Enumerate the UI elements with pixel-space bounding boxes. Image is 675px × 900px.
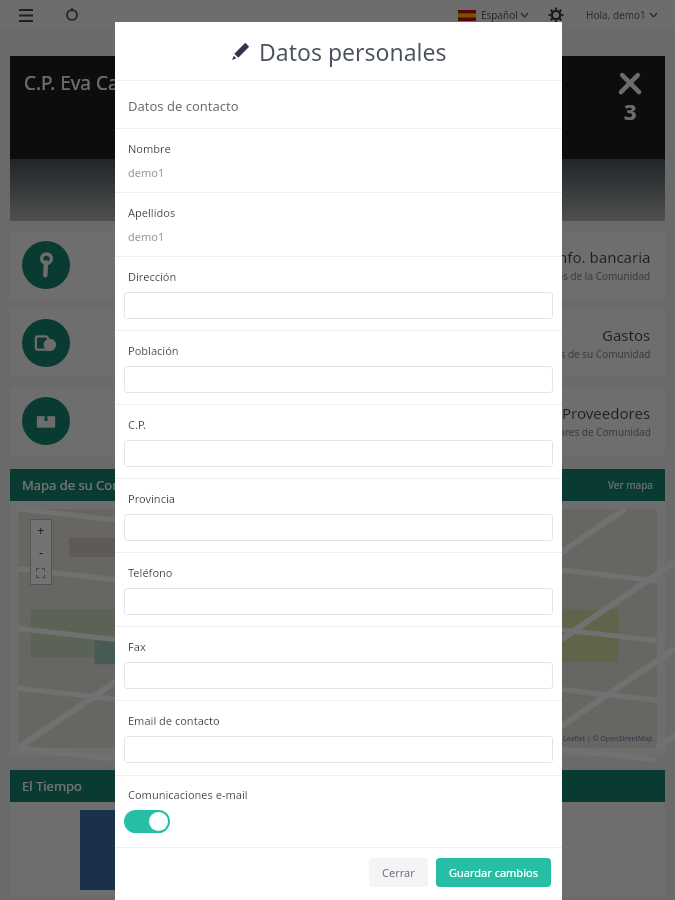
- button[interactable]: [124, 440, 553, 467]
- button[interactable]: Español: [454, 8, 532, 22]
- staticText: Provincia: [128, 491, 175, 506]
- staticText: Mapa de su Comunidad: [22, 476, 168, 494]
- staticText: Apellidos: [128, 205, 176, 220]
- button[interactable]: Notifications: [60, 3, 84, 27]
- staticText: Leaflet | © OpenStreetMap: [563, 734, 653, 744]
- staticText: Teléfono: [128, 565, 173, 580]
- staticText: Proveedores: [562, 403, 651, 423]
- staticText: Población: [128, 343, 179, 358]
- staticText: C.P.: [128, 417, 147, 432]
- staticText: ...edores de Comunidad: [539, 425, 651, 439]
- button[interactable]: +: [30, 519, 52, 541]
- button[interactable]: [124, 736, 553, 763]
- staticText: Guardar cambios: [449, 865, 538, 880]
- button[interactable]: ⛶: [30, 563, 52, 585]
- staticText: Info. bancaria: [553, 247, 651, 267]
- button[interactable]: Settings: [546, 5, 566, 25]
- button[interactable]: Proveedores: [10, 387, 665, 455]
- staticText: demo1: [128, 229, 165, 244]
- button[interactable]: -: [30, 541, 52, 563]
- button[interactable]: [124, 366, 553, 393]
- button[interactable]: Cerrar: [369, 858, 428, 887]
- button[interactable]: Menu: [14, 3, 38, 27]
- staticText: Dirección: [128, 269, 177, 284]
- staticText: Email de contacto: [128, 713, 220, 728]
- button[interactable]: Hola, demo1: [582, 8, 661, 22]
- staticText: Hola, demo1: [586, 8, 646, 22]
- button[interactable]: [124, 514, 553, 541]
- button[interactable]: Gastos: [10, 309, 665, 377]
- staticText: Fax: [128, 639, 146, 654]
- staticText: Datos personales: [259, 36, 447, 67]
- button[interactable]: [124, 662, 553, 689]
- staticText: demo1: [128, 165, 165, 180]
- staticText: Datos de contacto: [128, 97, 239, 115]
- button[interactable]: [124, 292, 553, 319]
- staticText: Ver mapa: [608, 478, 653, 492]
- staticText: Nombre: [128, 141, 171, 156]
- staticText: Cerrar: [382, 865, 415, 880]
- staticText: ...stos de su Comunidad: [538, 347, 651, 361]
- button[interactable]: Comunicaciones e-mail toggle: [124, 810, 170, 833]
- staticText: -: [39, 543, 44, 561]
- staticText: ...ncos de la Comunidad: [538, 269, 651, 283]
- button[interactable]: Ver mapa: [608, 478, 653, 492]
- button[interactable]: Info. bancaria: [10, 231, 665, 299]
- staticText: ⛶: [36, 568, 46, 581]
- staticText: Español: [481, 8, 518, 22]
- button[interactable]: Guardar cambios: [436, 858, 551, 887]
- staticText: +: [37, 521, 45, 539]
- staticText: 3: [624, 96, 637, 126]
- staticText: El Tiempo: [22, 777, 82, 795]
- staticText: Comunicaciones e-mail: [128, 787, 248, 802]
- button[interactable]: [124, 588, 553, 615]
- staticText: C.P. Eva Canel, 7: [24, 70, 167, 96]
- staticText: Gastos: [602, 325, 651, 345]
